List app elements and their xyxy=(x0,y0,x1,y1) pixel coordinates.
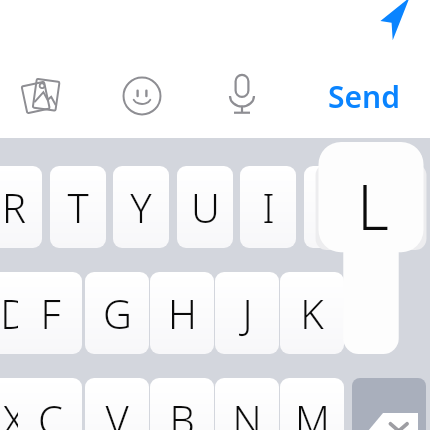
button[interactable]: R xyxy=(0,166,42,248)
button[interactable]: Photos xyxy=(14,68,70,124)
button[interactable]: Y xyxy=(113,166,169,248)
staticText: C xyxy=(38,392,63,430)
button[interactable]: F xyxy=(18,272,82,354)
staticText: R xyxy=(2,180,26,234)
staticText: D xyxy=(0,286,29,340)
button[interactable]: Send location xyxy=(358,0,414,48)
staticText: I xyxy=(262,180,275,234)
button[interactable]: Emoji xyxy=(114,68,170,124)
staticText: V xyxy=(105,392,129,430)
button[interactable]: X xyxy=(0,378,42,430)
button[interactable]: H xyxy=(150,272,214,354)
button[interactable]: M xyxy=(280,378,344,430)
button[interactable]: V xyxy=(85,378,149,430)
staticText: Y xyxy=(130,180,152,234)
button[interactable]: D xyxy=(0,272,42,354)
button[interactable]: T xyxy=(50,166,106,248)
button[interactable]: U xyxy=(177,166,233,248)
staticText: K xyxy=(300,286,324,340)
staticText: M xyxy=(295,392,330,430)
button[interactable]: B xyxy=(150,378,214,430)
button[interactable]: Send xyxy=(312,70,416,122)
button[interactable]: K xyxy=(280,272,344,354)
staticText: B xyxy=(169,392,195,430)
button[interactable]: Delete xyxy=(352,378,426,430)
button[interactable]: C xyxy=(18,378,82,430)
staticText: N xyxy=(232,392,262,430)
staticText: H xyxy=(168,286,197,340)
button[interactable]: L xyxy=(312,142,430,354)
staticText: Send xyxy=(328,76,400,117)
staticText: U xyxy=(191,180,220,234)
staticText: T xyxy=(67,180,89,234)
staticText: G xyxy=(103,286,132,340)
button[interactable] xyxy=(304,166,360,248)
button[interactable]: I xyxy=(240,166,296,248)
button[interactable]: J xyxy=(215,272,279,354)
staticText: L xyxy=(357,164,389,248)
button[interactable]: N xyxy=(215,378,279,430)
button[interactable]: Microphone xyxy=(214,64,270,124)
button[interactable]: G xyxy=(85,272,149,354)
staticText: X xyxy=(3,392,25,430)
staticText: F xyxy=(40,286,61,340)
staticText: J xyxy=(242,286,253,340)
